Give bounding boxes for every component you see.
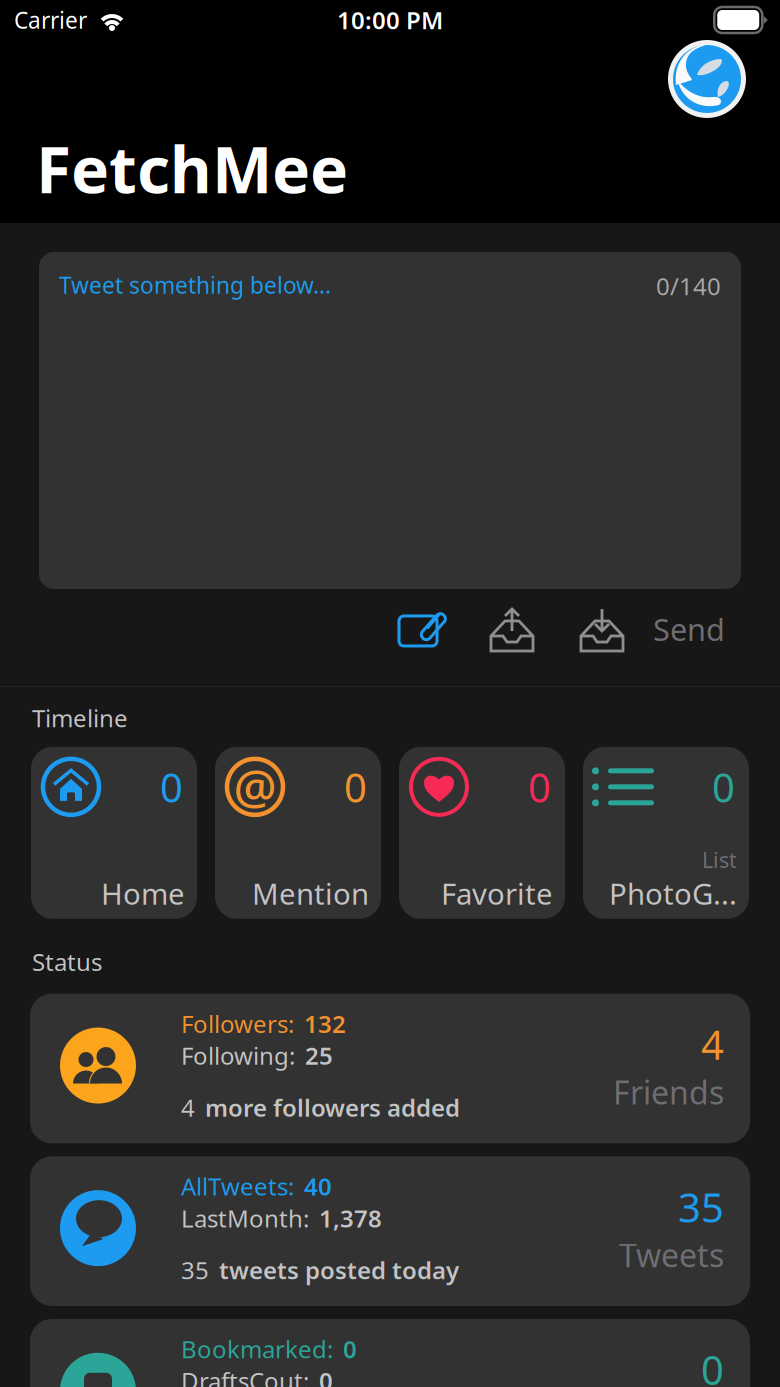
staticText: List: [702, 846, 737, 874]
staticText: DraftsCout:: [181, 1365, 309, 1387]
staticText: 4: [181, 1091, 195, 1123]
staticText: 0: [528, 760, 551, 813]
staticText: more followers added: [205, 1091, 460, 1123]
button[interactable]: Send: [653, 609, 725, 649]
staticText: 0: [160, 760, 183, 813]
button[interactable]: 0: [399, 747, 565, 919]
staticText: 1,378: [319, 1202, 382, 1234]
staticText: Following:: [181, 1040, 295, 1071]
staticText: tweets posted today: [219, 1254, 459, 1286]
staticText: @: [233, 754, 276, 818]
button[interactable]: Account: [668, 40, 746, 118]
staticText: Home: [101, 874, 185, 913]
staticText: 4: [701, 1018, 724, 1071]
staticText: Bookmarked:: [181, 1333, 333, 1365]
staticText: 0: [712, 760, 735, 813]
staticText: Tweet something below...: [59, 270, 331, 300]
button[interactable]: Followers:: [30, 994, 750, 1143]
staticText: LastMonth:: [181, 1202, 309, 1234]
staticText: Friends: [613, 1071, 724, 1113]
button[interactable]: 0: [583, 747, 749, 919]
staticText: 132: [304, 1008, 346, 1040]
staticText: 0: [319, 1365, 333, 1387]
staticText: 0/140: [656, 270, 721, 302]
button[interactable]: Export draft: [489, 607, 535, 651]
button[interactable]: AllTweets:: [30, 1156, 750, 1306]
button[interactable]: 0: [31, 747, 197, 919]
staticText: AllTweets:: [181, 1170, 294, 1202]
button[interactable]: Import draft: [579, 607, 625, 651]
staticText: Carrier: [14, 5, 87, 35]
button[interactable]: @: [215, 747, 381, 919]
staticText: PhotoG...: [609, 874, 737, 913]
staticText: 0: [343, 1333, 357, 1365]
button[interactable]: Bookmarked:: [30, 1319, 750, 1387]
button[interactable]: Attach photo: [399, 608, 445, 650]
staticText: 35: [678, 1180, 724, 1233]
staticText: 10:00 PM: [337, 4, 443, 36]
staticText: FetchMee: [36, 126, 348, 211]
staticText: 0: [344, 760, 367, 813]
staticText: 40: [304, 1170, 332, 1202]
staticText: Favorite: [441, 874, 553, 913]
staticText: Send: [653, 609, 725, 649]
staticText: Followers:: [181, 1008, 294, 1040]
staticText: 35: [181, 1254, 209, 1286]
staticText: Status: [32, 946, 102, 978]
staticText: 0: [701, 1343, 724, 1387]
staticText: 25: [305, 1040, 333, 1071]
staticText: Timeline: [32, 702, 128, 734]
staticText: Tweets: [619, 1233, 724, 1276]
staticText: Mention: [252, 874, 369, 913]
